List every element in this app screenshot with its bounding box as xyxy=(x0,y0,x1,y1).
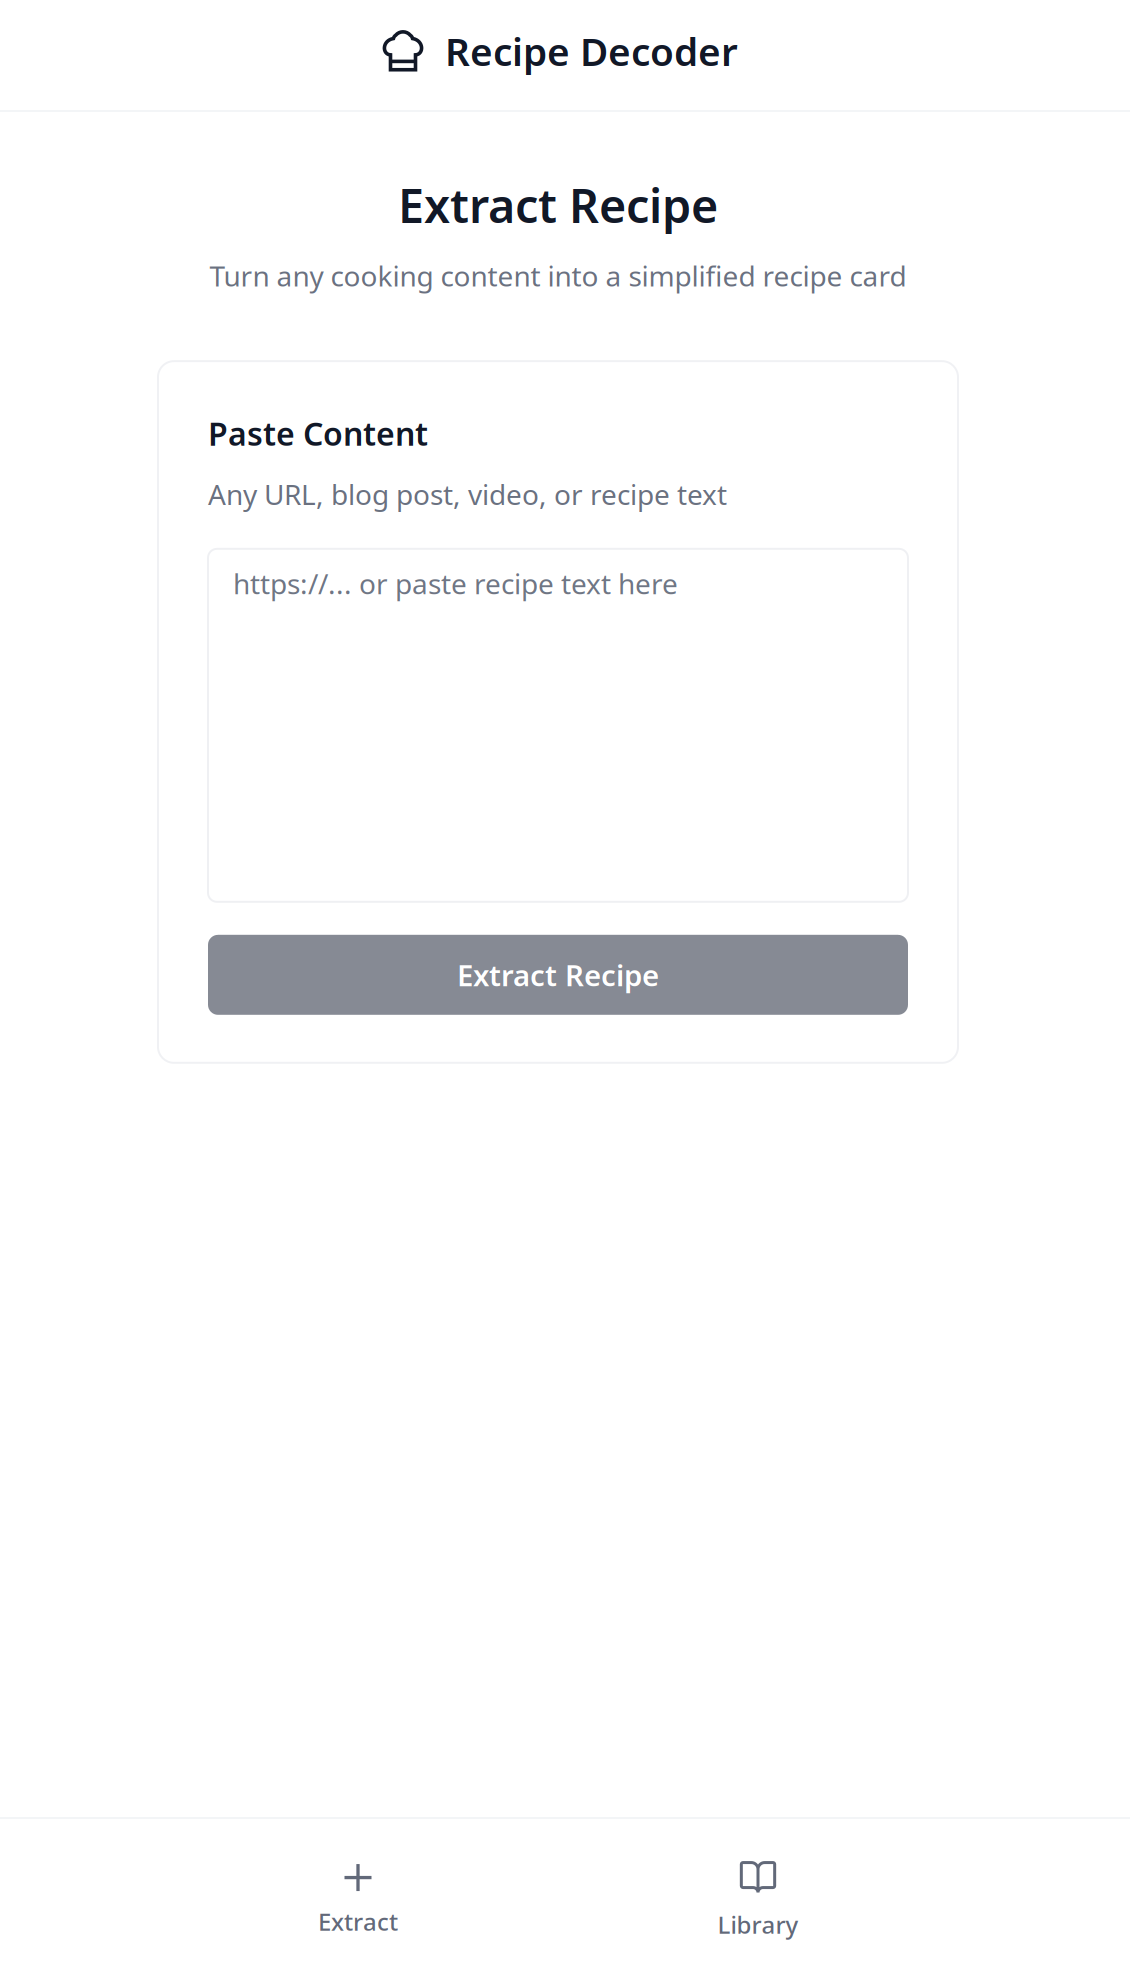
button[interactable]: Extract xyxy=(158,1817,558,1978)
staticText: Recipe Decoder xyxy=(445,25,738,77)
staticText: Extract Recipe xyxy=(457,955,659,994)
staticText: Extract xyxy=(318,1906,398,1937)
staticText: Any URL, blog post, video, or recipe tex… xyxy=(208,476,727,513)
staticText: Extract Recipe xyxy=(398,174,718,236)
button[interactable]: Extract Recipe xyxy=(208,935,908,1015)
staticText: Paste Content xyxy=(208,412,428,455)
staticText: Library xyxy=(717,1909,798,1940)
staticText: Turn any cooking content into a simplifi… xyxy=(209,257,906,294)
staticText: https://... or paste recipe text here xyxy=(233,565,678,602)
button[interactable]: Library xyxy=(558,1817,958,1978)
